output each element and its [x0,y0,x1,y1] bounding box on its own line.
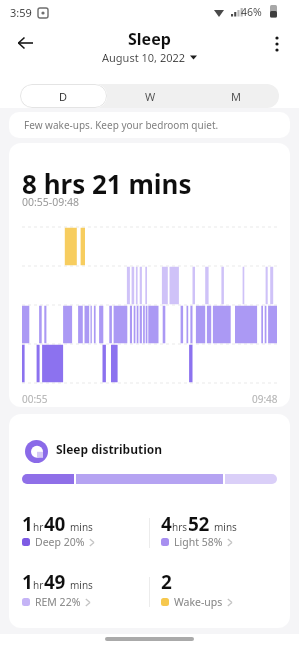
staticText: 1 [22,569,33,595]
staticText: 1 [22,511,33,537]
staticText: Sleep distribution [56,441,163,457]
staticText: 2 [161,569,172,595]
staticText: mins [214,520,237,534]
staticText: 3:59 [10,5,32,20]
staticText: Sleep [128,28,171,50]
button[interactable]: 1 [22,511,147,553]
button[interactable] [8,28,44,58]
staticText: hr [33,520,44,534]
staticText: M [231,89,241,104]
staticText: Wake-ups [174,595,223,609]
button[interactable]: D [20,84,107,108]
staticText: W [145,89,156,104]
staticText: August 10, 2022 [102,50,186,65]
button[interactable]: 2 [161,569,286,611]
staticText: REM 22% [35,595,81,609]
staticText: mins [70,578,93,592]
staticText: Deep 20% [35,535,85,549]
staticText: 00:55-09:48 [22,195,80,209]
staticText: 00:55 [22,392,48,406]
button[interactable]: Few wake-ups. Keep your bedroom quiet. [9,112,290,138]
staticText: Few wake-ups. Keep your bedroom quiet. [24,118,219,132]
staticText: hr [33,578,44,592]
staticText: 40 [44,511,66,537]
button[interactable]: 4 [161,511,286,553]
staticText: hrs [172,520,188,534]
staticText: D [59,89,68,104]
staticText: 46% [241,5,262,19]
button[interactable]: 1 [22,569,147,611]
button[interactable]: August 10, 2022 [0,50,299,65]
button[interactable] [262,29,292,59]
staticText: 4 [161,511,172,537]
staticText: 49 [44,569,66,595]
staticText: mins [70,520,93,534]
button[interactable]: W [107,84,193,108]
staticText: Light 58% [174,535,223,549]
staticText: 52 [188,511,210,537]
staticText: 09:48 [252,392,278,406]
button[interactable]: M [193,84,279,108]
staticText: 8 hrs 21 mins [22,166,192,201]
